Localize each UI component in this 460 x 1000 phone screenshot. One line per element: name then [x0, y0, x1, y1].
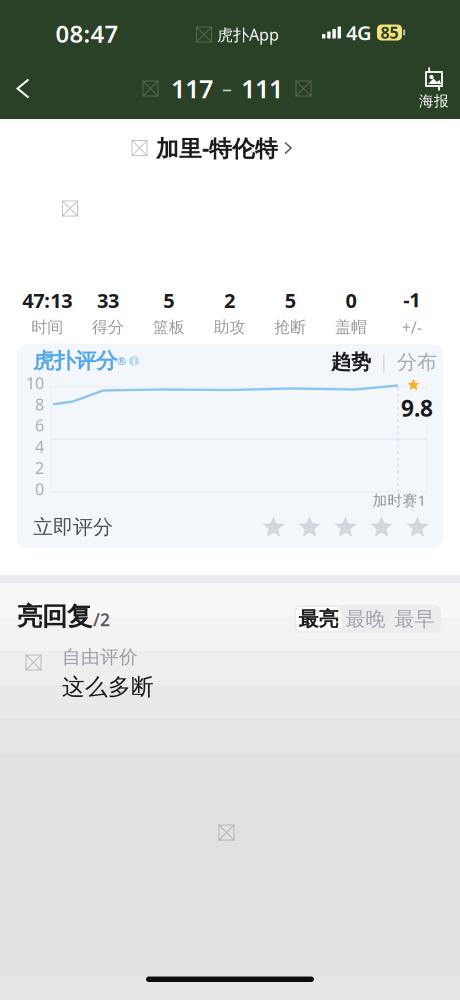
staticText: 分布	[397, 350, 437, 374]
staticText: |	[379, 350, 389, 373]
staticText: 5	[285, 287, 296, 313]
image	[62, 200, 78, 216]
staticText: 加里-特伦特	[156, 133, 278, 163]
staticText: 4G	[346, 19, 372, 46]
button[interactable]: 评分	[370, 516, 393, 539]
staticText: 85	[380, 22, 398, 43]
staticText: 海报	[419, 92, 449, 110]
staticText: ®	[117, 354, 126, 368]
image	[196, 26, 212, 42]
staticText: 助攻	[213, 317, 245, 337]
staticText: 虎扑评分	[33, 348, 117, 374]
button[interactable]: 加里-特伦特	[130, 119, 291, 163]
staticText: 最早	[394, 607, 434, 631]
staticText: +/-	[402, 317, 422, 338]
button[interactable]: 亮回复	[17, 606, 110, 632]
staticText: 自由评价	[62, 645, 138, 668]
staticText: i	[132, 354, 135, 368]
staticText: 最亮	[298, 607, 338, 631]
staticText: 47:13	[22, 287, 72, 313]
button[interactable]: 海报	[408, 59, 460, 117]
button[interactable]: 分布	[397, 351, 437, 373]
button[interactable]: 117	[139, 59, 315, 117]
button[interactable]: 返回	[0, 59, 46, 117]
staticText: 33	[97, 287, 119, 313]
image	[218, 824, 234, 840]
staticText: 111	[241, 72, 283, 105]
staticText: -1	[403, 286, 420, 313]
staticText: 5	[163, 287, 174, 313]
staticText: 08:47	[55, 18, 118, 49]
staticText: 趋势	[331, 350, 371, 374]
staticText: 篮板	[153, 317, 185, 337]
staticText: –	[222, 75, 232, 102]
button[interactable]: 趋势	[331, 351, 371, 373]
staticText: 抢断	[274, 317, 306, 337]
staticText: 10	[26, 372, 44, 394]
image	[142, 80, 158, 96]
button[interactable]: 评分	[262, 516, 285, 539]
staticText: 得分	[92, 317, 124, 337]
image	[131, 140, 147, 156]
staticText: 时间	[31, 317, 63, 337]
image	[295, 80, 311, 96]
staticText: 2	[35, 457, 44, 478]
image	[25, 654, 41, 670]
staticText: 117	[171, 72, 213, 105]
button[interactable]: 评分	[298, 516, 321, 539]
staticText: 这么多断	[62, 673, 154, 701]
staticText: 虎扑App	[217, 24, 279, 45]
staticText: 6	[35, 415, 44, 436]
button[interactable]: 评分	[334, 516, 357, 539]
button[interactable]: 评分	[406, 516, 429, 539]
staticText: 2	[224, 287, 235, 313]
staticText: 盖帽	[335, 317, 367, 337]
staticText: 亮回复	[17, 601, 92, 632]
button[interactable]: 最晚	[341, 607, 390, 631]
staticText: 4	[35, 436, 44, 457]
staticText: /2	[93, 608, 110, 631]
staticText: 最晚	[345, 607, 385, 631]
staticText: 8	[35, 394, 44, 415]
staticText: 0	[35, 478, 44, 500]
button[interactable]: 最亮	[296, 607, 341, 631]
staticText: 0	[345, 287, 356, 313]
staticText: 加时赛1	[372, 490, 425, 510]
staticText: 9.8	[401, 393, 433, 423]
button[interactable]: 最早	[390, 607, 439, 631]
staticText: 立即评分	[33, 515, 113, 539]
